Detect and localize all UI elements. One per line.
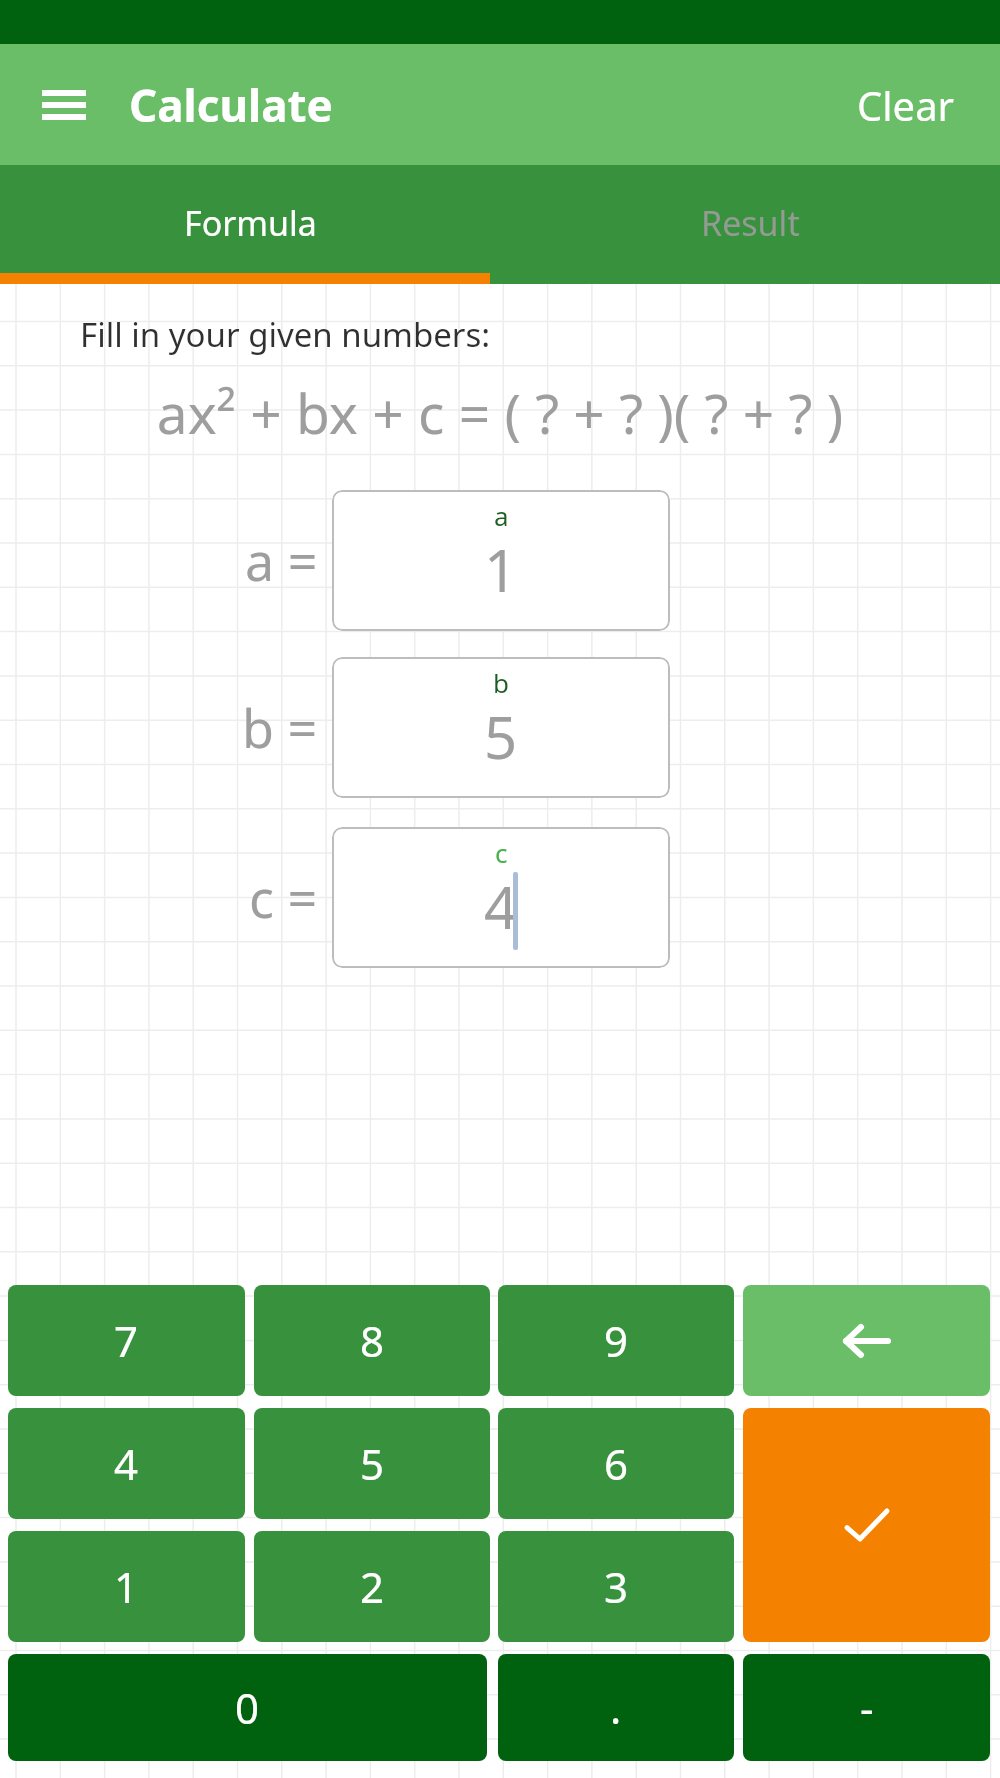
button[interactable]: a — [332, 490, 670, 631]
staticText: Formula — [184, 200, 317, 246]
button[interactable]: c — [332, 827, 670, 968]
staticText: 3 — [604, 1558, 629, 1615]
button[interactable] — [743, 1285, 990, 1396]
staticText: b = — [242, 692, 318, 763]
button[interactable]: 3 — [498, 1531, 734, 1642]
button[interactable]: 9 — [498, 1285, 734, 1396]
staticText: 4 — [484, 867, 518, 946]
button[interactable]: 6 — [498, 1408, 734, 1519]
button[interactable]: - — [743, 1654, 990, 1761]
staticText: 1 — [114, 1558, 139, 1615]
button[interactable]: 5 — [254, 1408, 490, 1519]
staticText: b — [493, 665, 509, 700]
button[interactable]: 0 — [8, 1654, 487, 1761]
button[interactable]: b — [332, 657, 670, 798]
staticText: 4 — [114, 1435, 139, 1492]
staticText: 6 — [604, 1435, 629, 1492]
staticText: Clear — [857, 78, 955, 132]
staticText: Calculate — [129, 75, 333, 135]
staticText: 5 — [484, 697, 518, 776]
staticText: 9 — [604, 1312, 629, 1369]
staticText: 5 — [360, 1435, 385, 1492]
staticText: . — [610, 1679, 622, 1736]
button[interactable] — [42, 90, 86, 120]
staticText: 7 — [114, 1312, 139, 1369]
staticText: Result — [701, 200, 800, 246]
staticText: - — [860, 1679, 874, 1736]
button[interactable]: 7 — [8, 1285, 245, 1396]
staticText: ax² + bx + c = ( ? + ? )( ? + ? ) — [0, 375, 1000, 450]
staticText: a = — [245, 525, 318, 596]
staticText: 0 — [235, 1679, 260, 1736]
staticText: 1 — [484, 530, 518, 609]
staticText: a — [494, 498, 509, 533]
staticText: 8 — [360, 1312, 385, 1369]
button[interactable]: Formula — [0, 165, 500, 273]
button[interactable]: 1 — [8, 1531, 245, 1642]
button[interactable]: . — [498, 1654, 734, 1761]
button[interactable]: Result — [500, 165, 1000, 273]
button[interactable]: 8 — [254, 1285, 490, 1396]
button[interactable]: 4 — [8, 1408, 245, 1519]
staticText: c = — [249, 862, 318, 933]
button[interactable] — [743, 1408, 990, 1642]
staticText: Fill in your given numbers: — [80, 312, 491, 357]
button[interactable]: Clear — [857, 78, 955, 132]
staticText: 2 — [360, 1558, 385, 1615]
button[interactable]: 2 — [254, 1531, 490, 1642]
staticText: c — [495, 835, 508, 870]
